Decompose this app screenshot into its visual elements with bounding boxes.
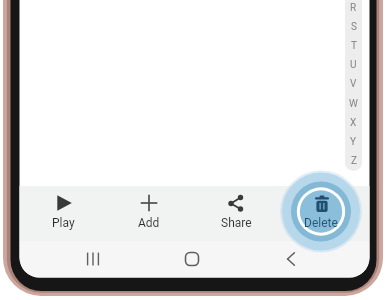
staticText: Z [351, 155, 357, 167]
staticText: Delete [304, 216, 338, 230]
staticText: Y [350, 136, 357, 148]
staticText: R [350, 2, 357, 14]
staticText: V [350, 78, 357, 90]
button[interactable]: Play [28, 185, 98, 235]
staticText: Share [221, 216, 252, 230]
staticText: W [349, 98, 358, 110]
staticText: X [350, 117, 357, 129]
staticText: Add [138, 216, 160, 230]
button[interactable]: Add [114, 185, 184, 235]
button[interactable] [267, 239, 315, 279]
button[interactable]: Delete [286, 185, 356, 235]
staticText: Play [52, 216, 75, 230]
button[interactable]: Share [201, 185, 271, 235]
staticText: U [350, 59, 357, 71]
button[interactable] [168, 239, 216, 279]
staticText: T [351, 40, 357, 52]
button[interactable] [69, 239, 117, 279]
staticText: S [351, 21, 357, 33]
